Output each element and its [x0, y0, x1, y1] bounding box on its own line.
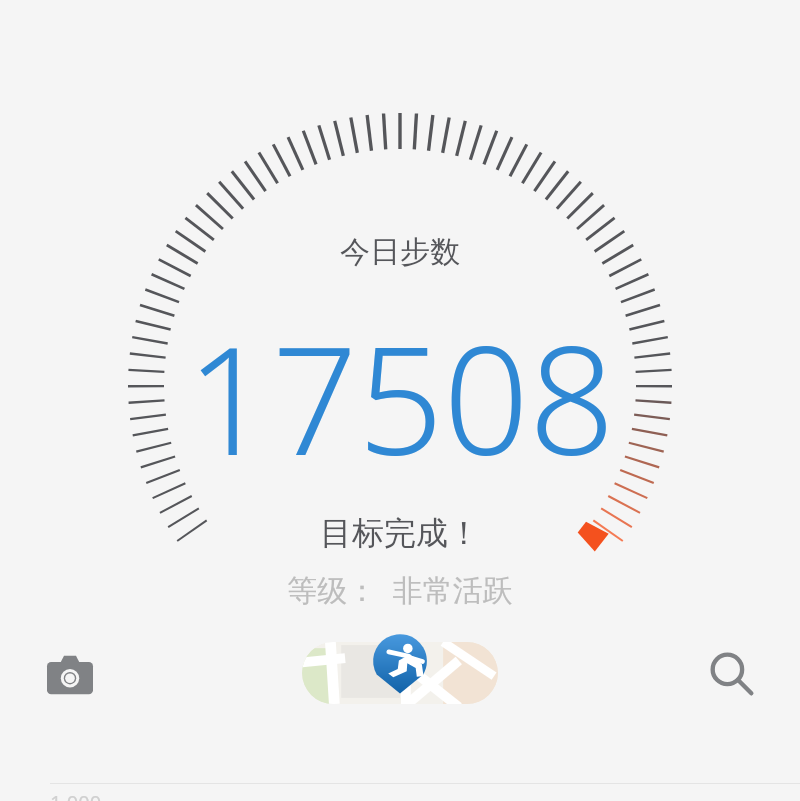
- staticText: 1,000: [50, 789, 102, 801]
- staticText: 17508: [186, 295, 615, 499]
- button[interactable]: Search: [700, 642, 764, 706]
- staticText: 今日步数: [340, 233, 460, 271]
- button[interactable]: Map, running route: [302, 642, 498, 704]
- staticText: 目标完成！: [320, 513, 480, 553]
- button[interactable]: Camera: [38, 643, 102, 707]
- staticText: 等级： 非常活跃: [287, 569, 513, 610]
